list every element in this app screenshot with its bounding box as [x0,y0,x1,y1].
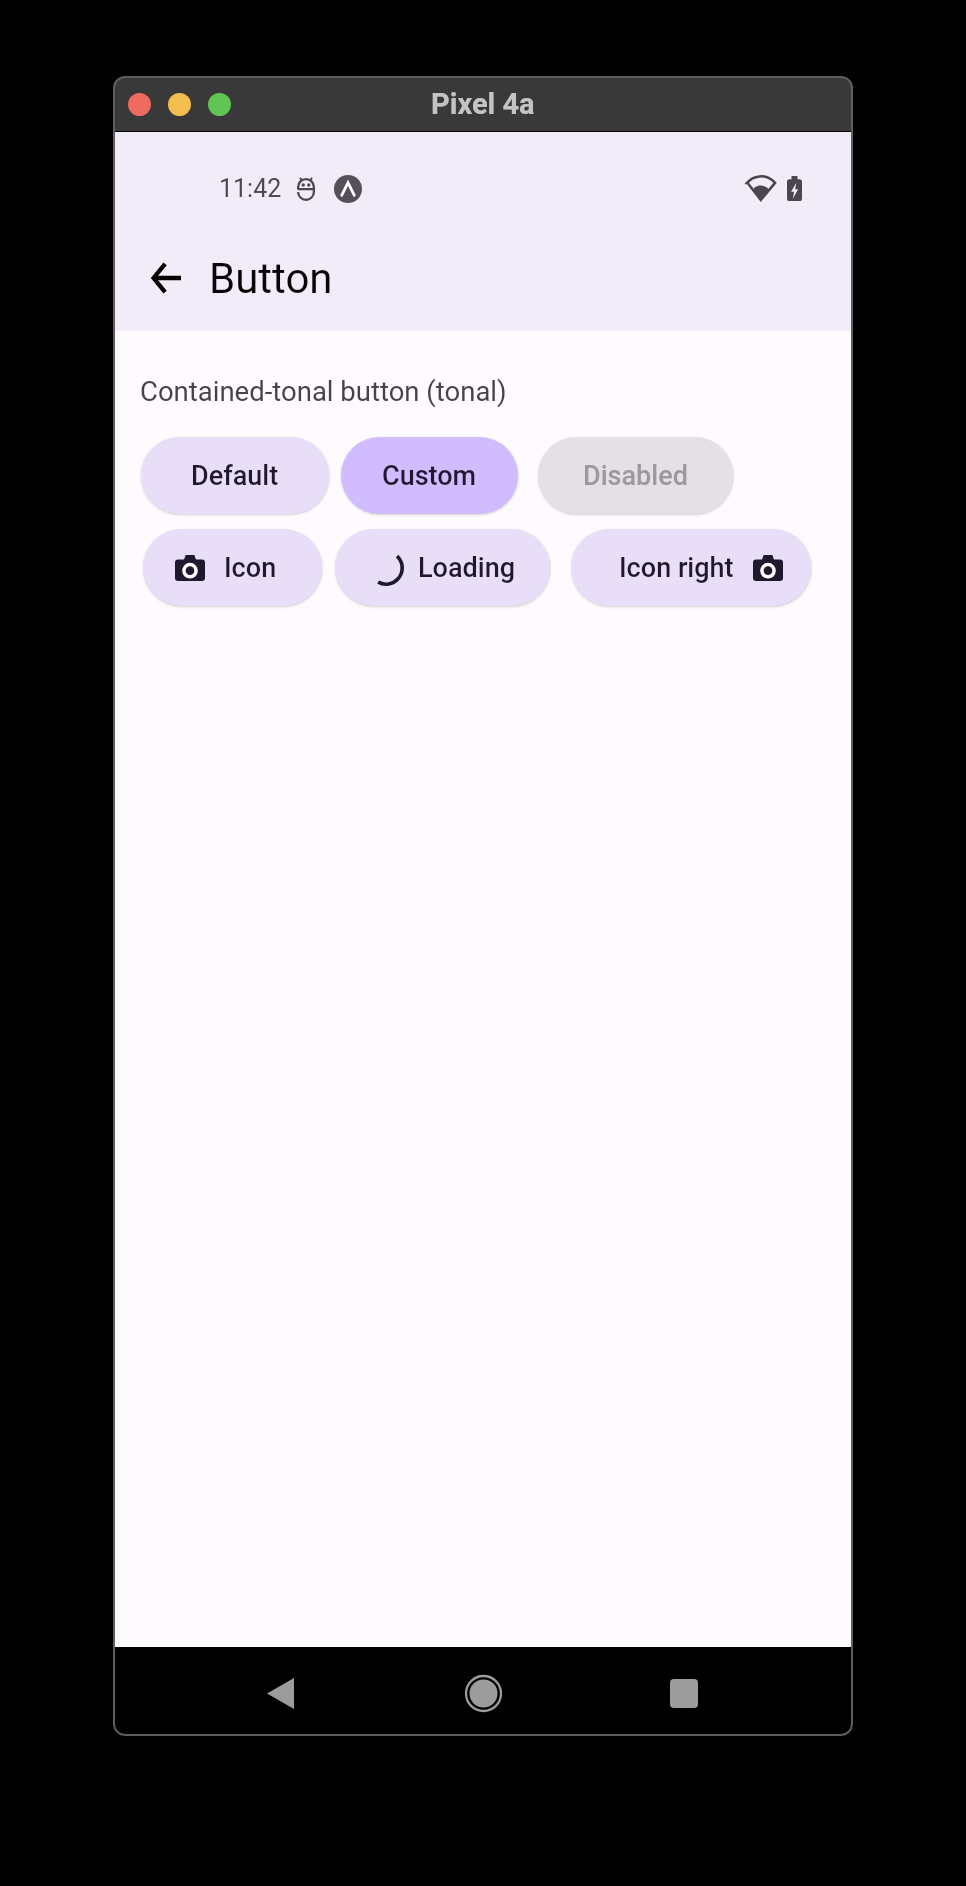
staticText: Loading [418,552,516,584]
button[interactable]: Default [141,437,329,514]
button[interactable]: Close [128,93,151,116]
button[interactable]: Custom [341,437,518,514]
staticText: Contained-tonal button (tonal) [140,375,507,407]
button[interactable]: Loading [335,529,550,606]
button[interactable]: Home [448,1658,518,1728]
staticText: Custom [382,460,477,492]
button[interactable]: Minimise [168,93,191,116]
button[interactable]: Icon right [571,529,811,606]
button[interactable]: Disabled [538,437,733,514]
staticText: Pixel 4a [431,87,535,121]
button[interactable]: Maximise [208,93,231,116]
button[interactable]: Icon [143,529,322,606]
staticText: 11:42 [219,174,282,203]
staticText: Button [209,254,333,303]
button[interactable]: Back [138,250,194,306]
staticText: Disabled [583,460,688,492]
staticText: Icon [224,552,277,584]
button[interactable]: Recent apps [649,1658,719,1728]
staticText: Default [191,460,279,492]
staticText: Icon right [619,552,734,584]
button[interactable]: Back [245,1658,315,1728]
